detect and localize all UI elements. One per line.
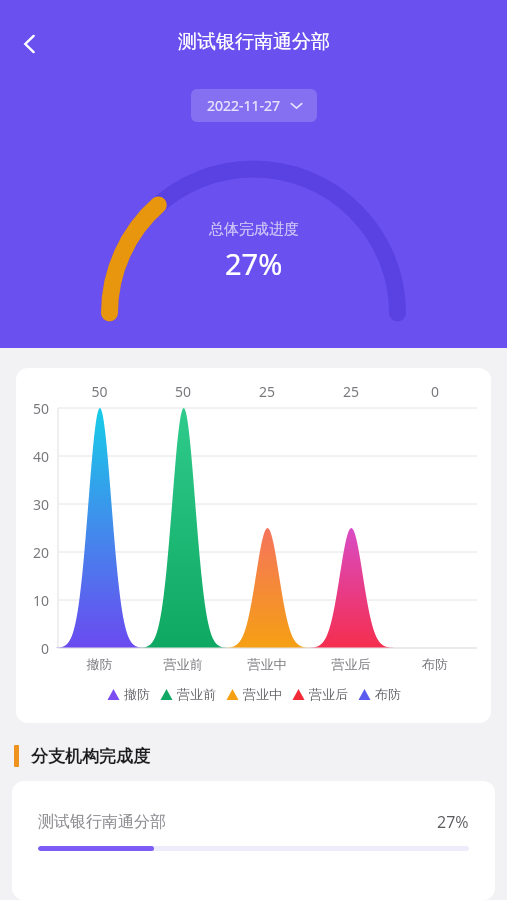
- staticText: 布防: [393, 656, 477, 672]
- staticText: 营业前: [141, 656, 225, 672]
- staticText: 测试银行南通分部: [38, 812, 166, 832]
- staticText: 20: [33, 543, 50, 562]
- button[interactable]: 测试银行南通分部: [12, 781, 495, 851]
- button[interactable]: 营业前: [160, 686, 216, 702]
- button[interactable]: 营业中: [226, 686, 282, 702]
- button[interactable]: 布防: [358, 686, 401, 702]
- staticText: 50: [141, 382, 225, 401]
- button[interactable]: Back: [6, 20, 54, 68]
- staticText: 分支机构完成度: [31, 746, 150, 767]
- button[interactable]: 撤防: [107, 686, 150, 702]
- staticText: 2022-11-27: [207, 96, 281, 115]
- staticText: 营业后: [309, 686, 348, 702]
- staticText: 0: [393, 382, 477, 401]
- staticText: 营业前: [177, 686, 216, 702]
- staticText: 27%: [437, 811, 469, 833]
- staticText: 10: [33, 591, 50, 610]
- staticText: 撤防: [58, 656, 141, 672]
- staticText: 27%: [225, 244, 283, 283]
- staticText: 40: [33, 447, 50, 466]
- staticText: 50: [33, 399, 50, 418]
- staticText: 营业中: [225, 656, 309, 672]
- staticText: 总体完成进度: [209, 220, 299, 239]
- button[interactable]: 营业后: [292, 686, 348, 702]
- staticText: 营业中: [243, 686, 282, 702]
- staticText: 测试银行南通分部: [178, 30, 330, 54]
- staticText: 25: [309, 382, 393, 401]
- staticText: 撤防: [124, 686, 150, 702]
- staticText: 25: [225, 382, 309, 401]
- staticText: 30: [33, 495, 50, 514]
- staticText: 营业后: [309, 656, 393, 672]
- staticText: 50: [58, 382, 141, 401]
- button[interactable]: 2022-11-27: [191, 89, 317, 122]
- staticText: 0: [41, 639, 50, 658]
- staticText: 布防: [375, 686, 401, 702]
